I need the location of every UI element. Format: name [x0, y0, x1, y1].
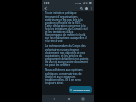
button[interactable]: Back	[50, 95, 57, 102]
button[interactable]: Recent apps	[79, 95, 86, 102]
button[interactable]: Profile	[84, 6, 89, 11]
staticText: Toute initiative politique émanant d'org…	[45, 11, 89, 42]
button[interactable]: Home	[65, 95, 72, 102]
staticText: La mémorandum du Corps des volontaires r…	[45, 44, 89, 66]
button[interactable]: More options	[89, 6, 93, 10]
staticText: Nouveau mess.	[73, 88, 91, 91]
button[interactable]: Back	[43, 6, 48, 11]
staticText: Nous adhérons aux opinions politiques co…	[45, 68, 89, 84]
button[interactable]: Nouveau mess.	[69, 86, 92, 93]
staticText: 17:49	[75, 1, 82, 4]
button[interactable]: Search	[79, 6, 84, 11]
